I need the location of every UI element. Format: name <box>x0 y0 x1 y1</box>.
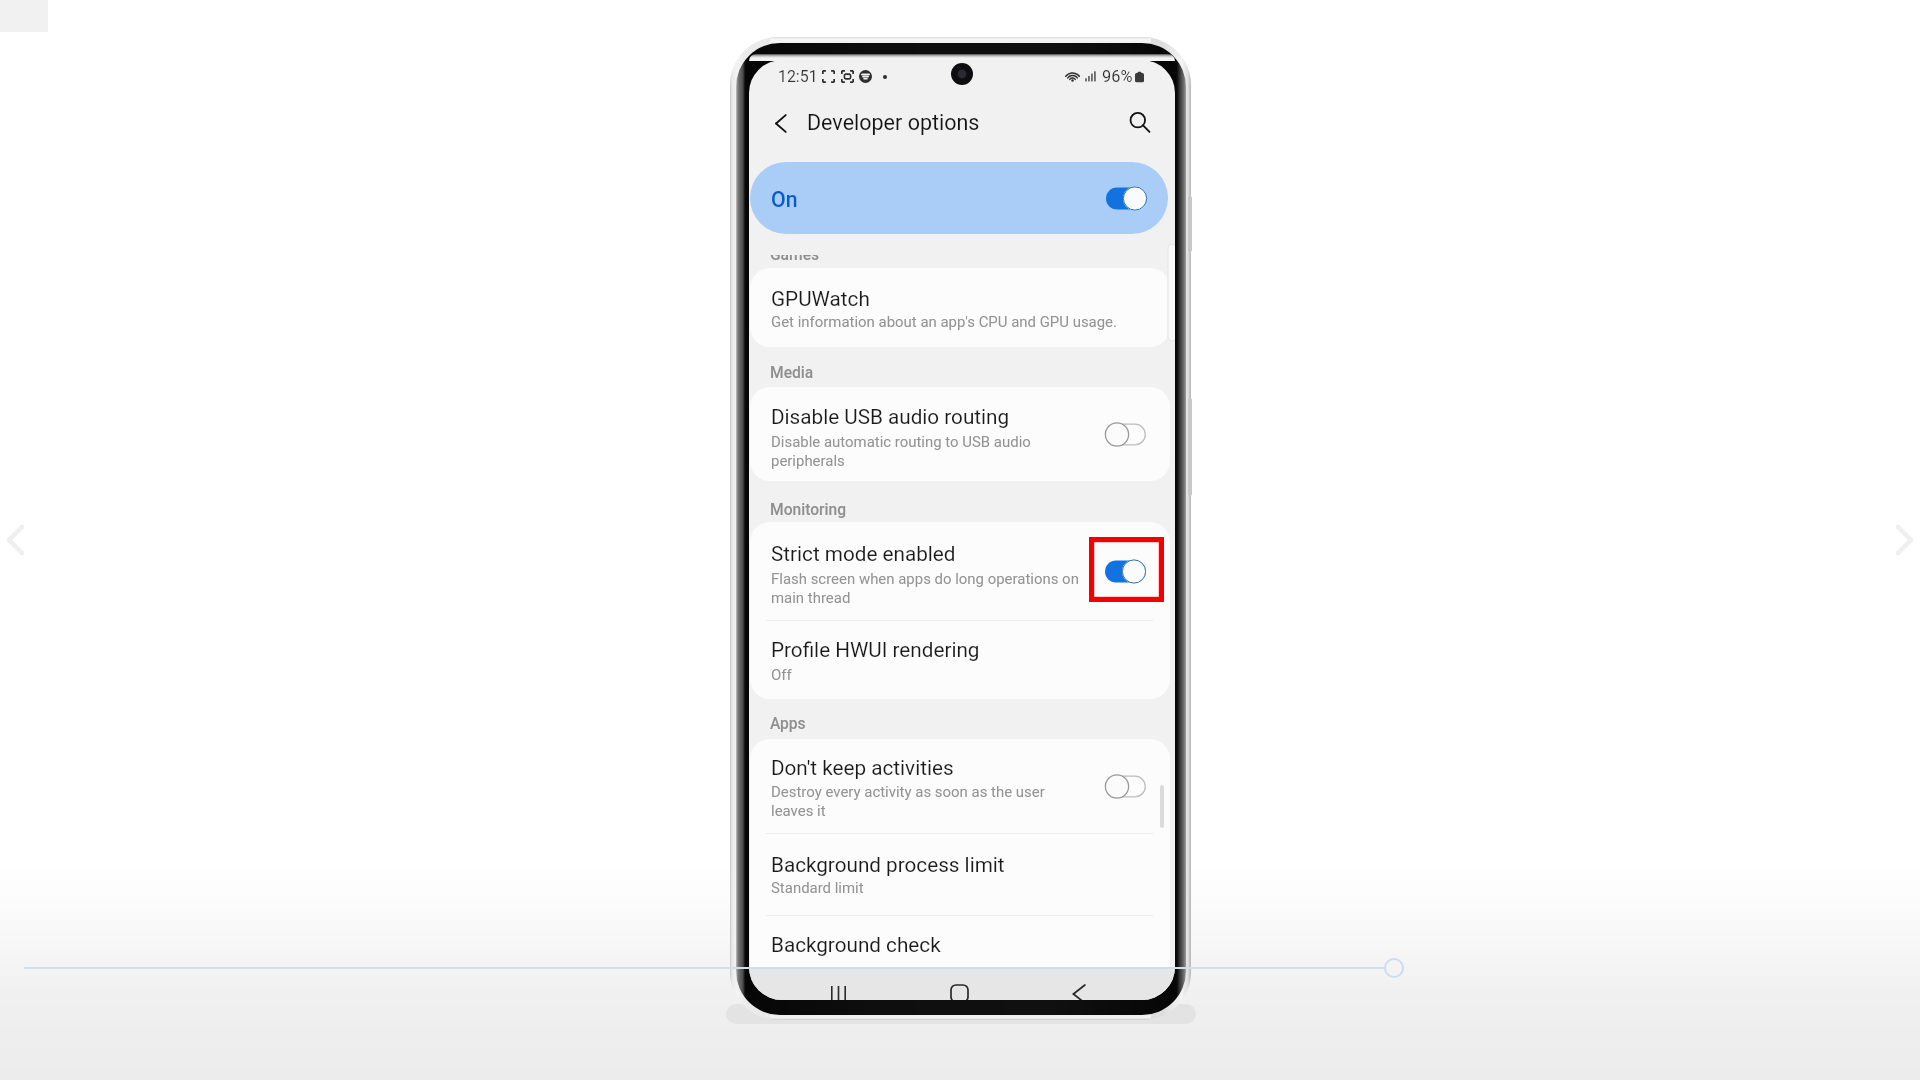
staticText: Off <box>771 666 792 684</box>
staticText: Disable automatic routing to USB audio <box>771 433 1031 451</box>
staticText: Monitoring <box>770 501 847 519</box>
staticText: leaves it <box>771 802 826 820</box>
button[interactable] <box>750 268 1170 347</box>
staticText: 96% <box>1102 67 1133 86</box>
button[interactable]: On <box>750 162 1168 234</box>
staticText: Disable USB audio routing <box>771 405 1010 429</box>
staticText: Standard limit <box>771 879 864 897</box>
staticText: Destroy every activity as soon as the us… <box>771 783 1045 801</box>
staticText: On <box>771 187 798 212</box>
button[interactable] <box>750 387 1170 481</box>
button[interactable]: Home <box>944 979 974 1000</box>
staticText: Developer options <box>807 110 980 135</box>
button[interactable] <box>750 621 1170 699</box>
staticText: Profile HWUI rendering <box>771 638 980 662</box>
staticText: Games <box>770 255 820 264</box>
staticText: Background process limit <box>771 853 1005 877</box>
staticText: Media <box>770 364 814 382</box>
button[interactable] <box>750 522 1170 620</box>
staticText: Background check <box>771 933 941 957</box>
button[interactable] <box>750 916 1170 969</box>
button[interactable]: Back <box>1064 979 1094 1000</box>
button[interactable] <box>750 834 1170 915</box>
staticText: peripherals <box>771 452 845 470</box>
staticText: GPUWatch <box>771 287 870 311</box>
staticText: 12:51 <box>778 67 818 86</box>
staticText: Flash screen when apps do long operation… <box>771 570 1079 588</box>
staticText: Apps <box>770 715 806 733</box>
button[interactable]: Recent apps <box>823 979 853 1000</box>
staticText: Strict mode enabled <box>771 542 956 566</box>
staticText: Get information about an app's CPU and G… <box>771 313 1117 331</box>
button[interactable] <box>750 739 1170 833</box>
staticText: main thread <box>771 589 851 607</box>
button[interactable]: Search <box>1123 107 1157 141</box>
staticText: Don't keep activities <box>771 756 954 780</box>
button[interactable]: Navigate up <box>764 108 796 140</box>
